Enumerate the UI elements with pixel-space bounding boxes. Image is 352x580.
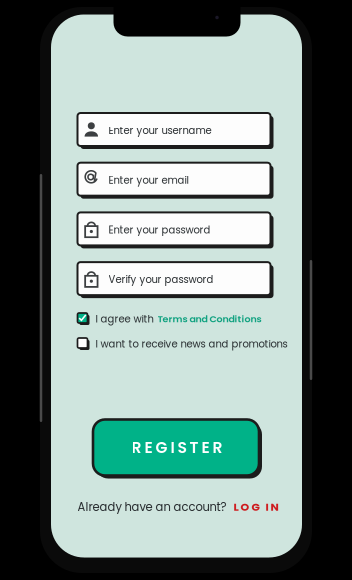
staticText: Already have an account?: [77, 499, 226, 515]
button[interactable]: Already have an account?: [77, 498, 278, 516]
button[interactable]: Enter your username: [77, 113, 273, 149]
staticText: R E G I S T E R: [131, 437, 222, 458]
staticText: Enter your username: [108, 123, 211, 137]
button[interactable]: R E G I S T E R: [90, 417, 261, 478]
button[interactable]: Verify your password: [77, 262, 273, 298]
button[interactable]: Enter your email: [77, 163, 273, 199]
staticText: L O G I N: [233, 499, 278, 515]
staticText: Enter your email: [108, 173, 188, 187]
staticText: Terms and Conditions: [157, 312, 261, 326]
staticText: Enter your password: [108, 223, 210, 237]
staticText: Verify your password: [108, 273, 213, 287]
button[interactable]: Enter your password: [77, 212, 273, 248]
staticText: I want to receive news and promotions: [95, 337, 287, 351]
staticText: I agree with: [95, 312, 153, 326]
button[interactable]: I want to receive news and promotions: [77, 337, 287, 351]
button[interactable]: I agree with: [77, 312, 287, 326]
